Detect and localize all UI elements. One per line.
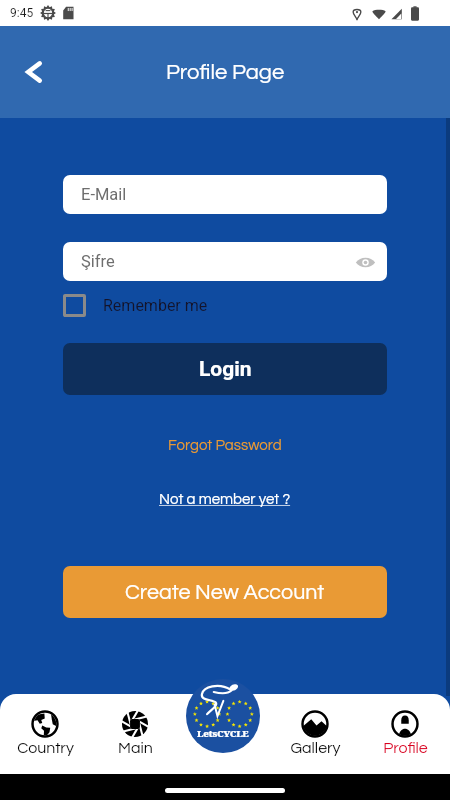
staticText: Gallery — [290, 740, 341, 756]
staticText: LetsCYCLE — [197, 727, 249, 740]
staticText: Remember me — [103, 296, 208, 315]
staticText: Main — [118, 740, 153, 756]
button[interactable]: Gallery — [270, 694, 360, 774]
staticText: Profile — [383, 740, 428, 756]
staticText: Login — [199, 357, 252, 382]
staticText: Country — [17, 740, 74, 756]
staticText: Şifre — [81, 252, 115, 271]
staticText: Not a member yet ? — [159, 492, 291, 507]
staticText: Create New Account — [125, 581, 325, 603]
button[interactable]: Back — [14, 52, 54, 92]
button[interactable]: Country — [0, 694, 90, 774]
button[interactable]: Forgot Password — [160, 435, 290, 456]
button[interactable]: Şifre — [63, 242, 387, 281]
staticText: Forgot Password — [168, 438, 282, 453]
button[interactable]: Profile — [360, 694, 450, 774]
button[interactable]: Main — [90, 694, 180, 774]
button[interactable]: E-Mail — [63, 175, 387, 214]
button[interactable]: Not a member yet ? — [151, 489, 299, 510]
staticText: Profile Page — [166, 61, 285, 84]
staticText: E-Mail — [81, 185, 127, 204]
button[interactable]: Show password — [351, 248, 379, 276]
staticText: 9:45 — [10, 6, 34, 20]
button[interactable]: LetsCYCLE — [186, 679, 260, 753]
button[interactable]: Login — [63, 343, 387, 395]
button[interactable]: Create New Account — [63, 566, 387, 618]
button[interactable]: Remember me — [63, 294, 208, 317]
